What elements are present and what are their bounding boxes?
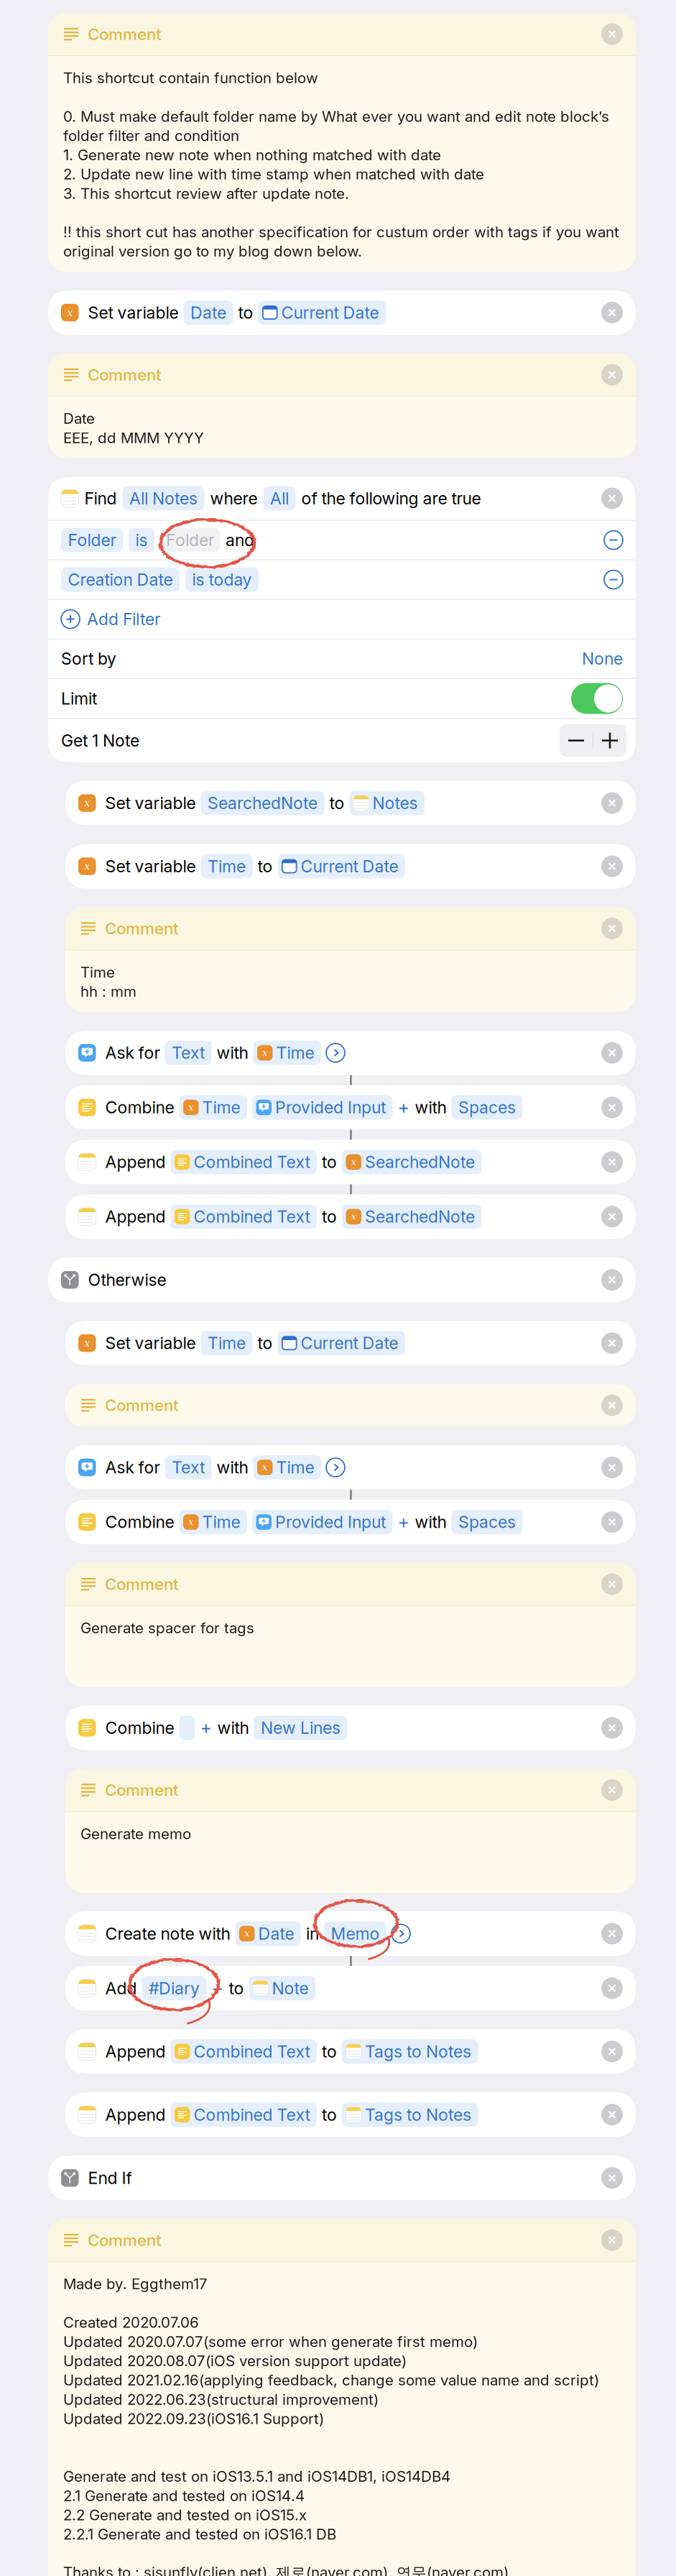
- staticText: Folder: [166, 530, 214, 550]
- staticText: Find: [84, 488, 117, 508]
- button[interactable]: Decrease: [560, 725, 593, 756]
- button[interactable]: Comment: [0, 13, 676, 272]
- staticText: Ask for: [105, 1043, 160, 1063]
- staticText: 2.2 Generate and tested on iOS15.x: [63, 2506, 307, 2524]
- button[interactable]: Comment: [0, 1384, 676, 1426]
- staticText: x: [351, 1157, 356, 1167]
- staticText: of the following are true: [301, 488, 481, 508]
- staticText: Combined Text: [194, 2105, 310, 2125]
- staticText: with: [217, 1043, 248, 1063]
- staticText: x: [262, 1048, 267, 1058]
- staticText: x: [84, 1337, 90, 1349]
- button[interactable]: Create note with: [0, 1911, 676, 1956]
- button[interactable]: Append: [0, 1194, 676, 1239]
- staticText: +: [212, 1977, 224, 1999]
- staticText: Tags to Notes: [365, 2105, 471, 2125]
- staticText: to: [322, 2041, 337, 2061]
- staticText: where: [210, 488, 258, 508]
- staticText: to: [238, 303, 253, 323]
- staticText: EEE, dd MMM YYYY: [63, 429, 204, 447]
- staticText: Add Filter: [87, 609, 160, 629]
- staticText: +: [398, 1096, 410, 1118]
- staticText: Combine: [105, 1718, 174, 1738]
- staticText: Generate and test on iOS13.5.1 and iOS14…: [63, 2467, 450, 2485]
- staticText: Current Date: [301, 856, 398, 876]
- staticText: Combine: [105, 1097, 174, 1117]
- staticText: Set variable: [105, 856, 196, 876]
- staticText: All: [270, 488, 289, 508]
- button[interactable]: Combine: [0, 1085, 676, 1130]
- button[interactable]: x: [0, 290, 676, 335]
- staticText: Creation Date: [68, 570, 173, 590]
- staticText: with: [217, 1457, 248, 1477]
- staticText: Comment: [105, 1395, 179, 1415]
- staticText: to: [322, 2105, 337, 2125]
- staticText: #Diary: [149, 1978, 200, 1998]
- button[interactable]: Ask for: [0, 1031, 676, 1075]
- staticText: Spaces: [458, 1097, 516, 1117]
- button[interactable]: x: [0, 781, 676, 825]
- staticText: Append: [105, 1207, 166, 1227]
- staticText: Comment: [105, 1780, 179, 1800]
- staticText: Text: [172, 1043, 205, 1063]
- staticText: to: [329, 793, 344, 813]
- staticText: Memo: [331, 1924, 380, 1944]
- staticText: Spaces: [458, 1512, 516, 1532]
- button[interactable]: Append: [0, 1140, 676, 1184]
- staticText: Combine: [105, 1512, 174, 1532]
- staticText: This shortcut contain function below: [63, 69, 318, 87]
- button[interactable]: Limit: [571, 683, 623, 714]
- staticText: Combined Text: [194, 1152, 310, 1172]
- button[interactable]: Combine: [0, 1706, 676, 1750]
- staticText: Provided Input: [275, 1512, 386, 1532]
- staticText: Date: [63, 410, 95, 427]
- staticText: Set variable: [105, 793, 196, 813]
- button[interactable]: Ask for: [0, 1445, 676, 1490]
- staticText: is: [135, 530, 148, 550]
- staticText: +: [200, 1717, 212, 1739]
- button[interactable]: Otherwise: [0, 1258, 676, 1302]
- staticText: Combined Text: [194, 1207, 310, 1227]
- staticText: Time: [208, 856, 246, 876]
- staticText: Folder: [68, 530, 116, 550]
- staticText: New Lines: [261, 1718, 341, 1738]
- button[interactable]: Combine: [0, 1500, 676, 1544]
- button[interactable]: Append: [0, 2092, 676, 2137]
- staticText: 0. Must make default folder name by What…: [63, 107, 609, 125]
- button[interactable]: x: [0, 844, 676, 889]
- button[interactable]: Append: [0, 2029, 676, 2074]
- button[interactable]: Comment: [0, 2219, 676, 2576]
- button[interactable]: Add: [0, 1966, 676, 2011]
- button[interactable]: Increase: [593, 725, 626, 756]
- staticText: Notes: [372, 793, 418, 813]
- staticText: hh : mm: [80, 983, 136, 1000]
- staticText: to: [322, 1207, 337, 1227]
- staticText: with: [415, 1097, 446, 1117]
- staticText: to: [322, 1152, 337, 1172]
- button[interactable]: Comment: [0, 1769, 676, 1893]
- staticText: Comment: [88, 365, 162, 384]
- button[interactable]: Sort by: [48, 639, 636, 678]
- staticText: Updated 2021.02.16(applying feedback, ch…: [63, 2371, 599, 2389]
- staticText: with: [217, 1718, 249, 1738]
- button[interactable]: Comment: [0, 907, 676, 1012]
- staticText: x: [351, 1211, 356, 1222]
- button[interactable]: Comment: [0, 354, 676, 458]
- staticText: Tags to Notes: [365, 2041, 471, 2061]
- button[interactable]: End If: [0, 2156, 676, 2200]
- staticText: Current Date: [281, 303, 379, 323]
- staticText: !! this short cut has another specificat…: [63, 223, 619, 241]
- button[interactable]: Add Filter: [48, 600, 636, 639]
- staticText: in: [306, 1924, 319, 1944]
- button[interactable]: Comment: [0, 1563, 676, 1687]
- button[interactable]: x: [0, 1321, 676, 1365]
- staticText: Append: [105, 2105, 166, 2125]
- staticText: Comment: [105, 919, 179, 938]
- staticText: SearchedNote: [365, 1152, 475, 1172]
